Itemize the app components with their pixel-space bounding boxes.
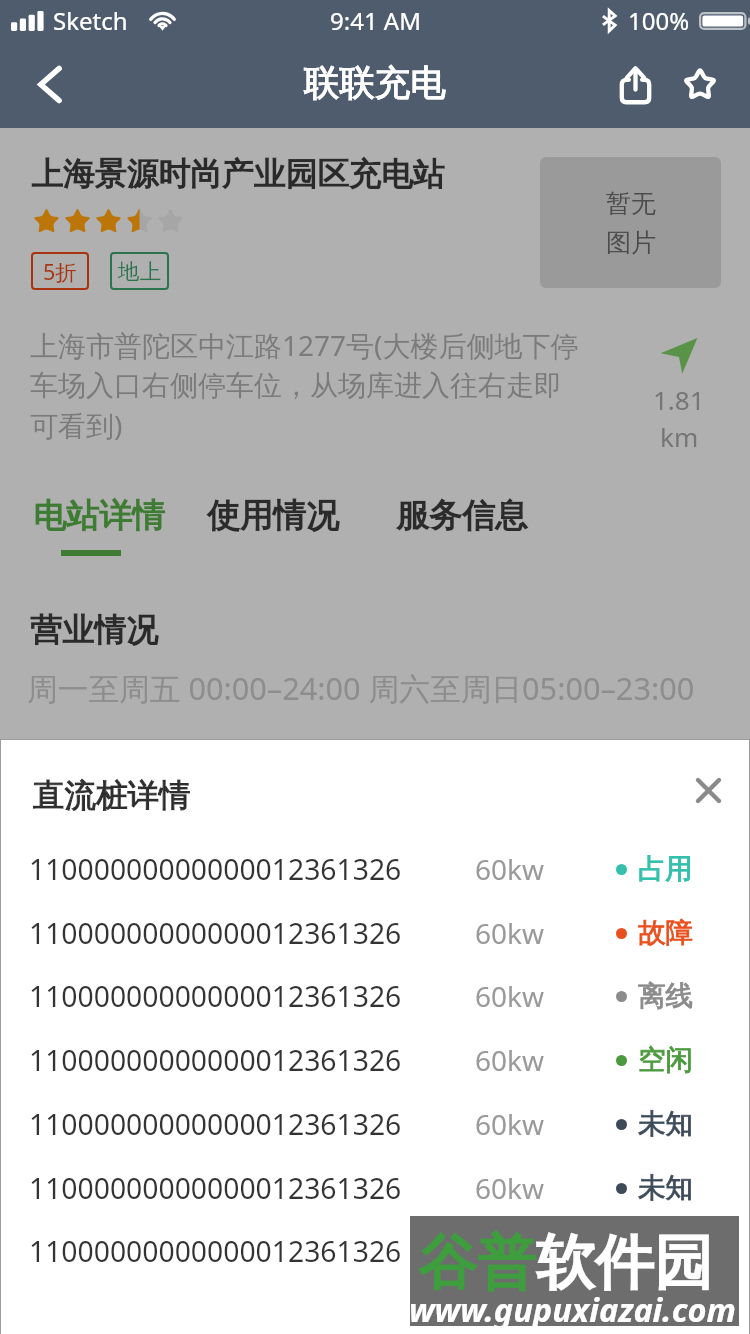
staticText: 未知	[638, 1171, 693, 1206]
button[interactable]: Back	[16, 48, 84, 120]
staticText: 故障	[638, 916, 693, 951]
staticText: 5折	[43, 257, 77, 286]
button[interactable]: 11000000000000012361326	[1, 913, 749, 953]
button[interactable]: 11000000000000012361326	[1, 1231, 749, 1271]
staticText: 空闲	[638, 1043, 693, 1078]
staticText: 电站详情	[33, 495, 165, 537]
staticText: 联联充电	[304, 61, 446, 106]
button[interactable]: 11000000000000012361326	[1, 1168, 749, 1208]
staticText: 60kw	[475, 1041, 544, 1079]
staticText: 1.81	[653, 382, 705, 417]
staticText: km	[660, 419, 699, 454]
staticText: 使用情况	[207, 495, 339, 537]
button[interactable]: 5折	[31, 252, 89, 290]
staticText: 联联充电	[304, 61, 446, 106]
button[interactable]: 暂无	[540, 157, 721, 288]
staticText: 暂无	[606, 188, 656, 219]
staticText: 上海景源时尚产业园区充电站	[31, 154, 445, 194]
staticText: 11000000000000012361326	[29, 850, 402, 889]
staticText: 图片	[606, 227, 656, 258]
staticText: 11000000000000012361326	[29, 1041, 402, 1080]
staticText: 服务信息	[396, 495, 528, 537]
staticText: 100%	[628, 4, 690, 37]
button[interactable]: 服务信息	[396, 495, 528, 537]
staticText: 未知	[638, 1107, 693, 1142]
staticText: 11000000000000012361326	[29, 1105, 402, 1144]
staticText: 直流桩详情	[33, 776, 191, 816]
button[interactable]: 使用情况	[207, 495, 339, 537]
staticText: 软件园	[536, 1226, 713, 1300]
staticText: 空闲	[638, 1043, 693, 1078]
button[interactable]: 11000000000000012361326	[1, 849, 749, 889]
staticText: 谷普	[418, 1226, 536, 1300]
staticText: 离线	[638, 979, 693, 1014]
staticText: 未知	[638, 1171, 693, 1206]
staticText: 60kw	[475, 914, 544, 952]
button[interactable]: 11000000000000012361326	[1, 1040, 749, 1080]
staticText: 故障	[638, 916, 693, 951]
staticText: 上海市普陀区中江路1277号(大楼后侧地下停车场入口右侧停车位，从场库进入往右走…	[30, 326, 586, 444]
staticText: 未知	[638, 1234, 693, 1269]
staticText: 直流桩详情	[33, 776, 191, 816]
staticText: 占用	[638, 852, 693, 887]
button[interactable]: 地上	[110, 252, 169, 290]
staticText: 9:41 AM	[330, 4, 421, 37]
staticText: 60kw	[475, 850, 544, 888]
staticText: 未知	[638, 1234, 693, 1269]
button[interactable]: Share	[603, 48, 667, 120]
staticText: 60kw	[475, 1232, 544, 1270]
staticText: 60kw	[475, 1169, 544, 1207]
staticText: 11000000000000012361326	[29, 1169, 402, 1208]
button[interactable]: 11000000000000012361326	[1, 1104, 749, 1144]
staticText: 周一至周五 00:00–24:00 周六至周日05:00–23:00	[27, 667, 695, 709]
staticText: 11000000000000012361326	[29, 1232, 402, 1271]
staticText: www.gupuxiazai.com	[409, 1287, 736, 1331]
staticText: 未知	[638, 1107, 693, 1142]
staticText: 60kw	[475, 977, 544, 1015]
button[interactable]: Navigate	[639, 337, 719, 454]
staticText: 地上	[118, 258, 161, 285]
button[interactable]: Favorite	[668, 48, 732, 120]
staticText: 占用	[638, 852, 693, 887]
staticText: 11000000000000012361326	[29, 977, 402, 1016]
staticText: 11000000000000012361326	[29, 914, 402, 953]
button[interactable]: 电站详情	[33, 495, 165, 537]
staticText: 营业情况	[30, 610, 158, 650]
staticText: 60kw	[475, 1105, 544, 1143]
button[interactable]: Close	[686, 768, 730, 812]
staticText: Sketch	[53, 4, 128, 37]
button[interactable]: 11000000000000012361326	[1, 976, 749, 1016]
staticText: 离线	[638, 979, 693, 1014]
